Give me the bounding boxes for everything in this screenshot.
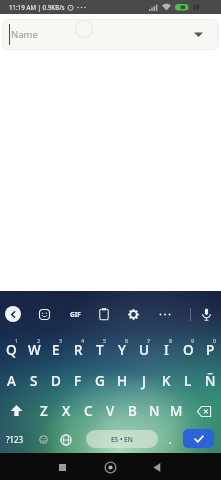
button[interactable]: L <box>177 365 199 396</box>
button[interactable]: ES • EN <box>86 430 158 448</box>
staticText: V <box>106 402 115 420</box>
staticText: P <box>206 341 215 359</box>
staticText: Ñ <box>205 372 216 390</box>
staticText: X <box>62 402 71 420</box>
staticText: S <box>30 372 38 390</box>
staticText: D <box>51 372 61 390</box>
staticText: B <box>128 402 137 420</box>
button[interactable] <box>148 458 166 476</box>
button[interactable] <box>94 302 114 326</box>
staticText: Z <box>40 402 48 420</box>
button[interactable]: G <box>89 365 111 396</box>
button[interactable]: M <box>165 396 187 426</box>
button[interactable] <box>183 429 214 448</box>
staticText: 5 <box>103 337 107 344</box>
button[interactable]: Name <box>2 19 219 50</box>
button[interactable]: H <box>111 365 133 396</box>
staticText: 4 <box>81 337 85 344</box>
button[interactable]: Y <box>111 334 133 365</box>
staticText: J <box>142 372 146 390</box>
staticText: M <box>170 402 183 420</box>
button[interactable]: ?123 <box>2 426 28 453</box>
staticText: 3 <box>59 337 63 344</box>
button[interactable] <box>53 458 71 476</box>
button[interactable]: R <box>67 334 89 365</box>
staticText: 8 <box>169 337 173 344</box>
staticText: 11:19 AM | 0.9KB/s <box>9 3 65 11</box>
button[interactable]: V <box>99 396 121 426</box>
button[interactable]: B <box>121 396 143 426</box>
button[interactable]: A <box>0 365 23 396</box>
staticText: F <box>74 372 82 390</box>
staticText: I <box>164 341 169 359</box>
button[interactable] <box>0 396 33 426</box>
staticText: GIF <box>70 310 81 319</box>
staticText: U <box>139 341 149 359</box>
button[interactable]: . <box>163 426 177 453</box>
staticText: E <box>52 341 60 359</box>
button[interactable]: C <box>77 396 99 426</box>
button[interactable] <box>187 396 221 426</box>
staticText: Name <box>11 28 38 41</box>
staticText: N <box>149 402 160 420</box>
staticText: Q <box>6 341 17 359</box>
button[interactable]: N <box>143 396 165 426</box>
button[interactable] <box>5 306 21 322</box>
button[interactable]: T <box>89 334 111 365</box>
staticText: ES • EN <box>111 435 133 444</box>
button[interactable]: J <box>133 365 155 396</box>
button[interactable] <box>123 302 143 326</box>
staticText: 2 <box>37 337 41 344</box>
button[interactable]: S <box>23 365 45 396</box>
staticText: L <box>184 372 192 390</box>
staticText: G <box>95 372 105 390</box>
staticText: 0 <box>213 337 217 344</box>
button[interactable] <box>101 458 119 476</box>
staticText: C <box>84 402 93 420</box>
button[interactable] <box>34 302 54 326</box>
button[interactable]: W <box>23 334 45 365</box>
staticText: K <box>162 372 171 390</box>
button[interactable]: P <box>199 334 221 365</box>
button[interactable] <box>196 302 216 326</box>
button[interactable]: GIF <box>64 302 86 326</box>
staticText: A <box>7 372 16 390</box>
staticText: T <box>96 341 104 359</box>
staticText: 6 <box>125 337 129 344</box>
staticText: H <box>117 372 128 390</box>
button[interactable]: D <box>45 365 67 396</box>
button[interactable]: F <box>67 365 89 396</box>
button[interactable]: Q <box>0 334 23 365</box>
button[interactable]: X <box>55 396 77 426</box>
button[interactable]: I <box>155 334 177 365</box>
button[interactable]: E <box>45 334 67 365</box>
button[interactable]: K <box>155 365 177 396</box>
staticText: 7 <box>147 337 151 344</box>
staticText: W <box>28 341 41 359</box>
staticText: 1 <box>15 337 19 344</box>
staticText: 9 <box>191 337 195 344</box>
staticText: O <box>183 341 194 359</box>
button[interactable] <box>57 426 75 453</box>
button[interactable] <box>34 426 52 453</box>
staticText: ?123 <box>6 434 24 445</box>
button[interactable]: O <box>177 334 199 365</box>
staticText: . <box>169 434 172 446</box>
button[interactable]: U <box>133 334 155 365</box>
staticText: Y <box>118 341 126 359</box>
button[interactable]: Ñ <box>199 365 221 396</box>
button[interactable] <box>155 302 175 326</box>
button[interactable]: Z <box>33 396 55 426</box>
staticText: R <box>74 341 83 359</box>
